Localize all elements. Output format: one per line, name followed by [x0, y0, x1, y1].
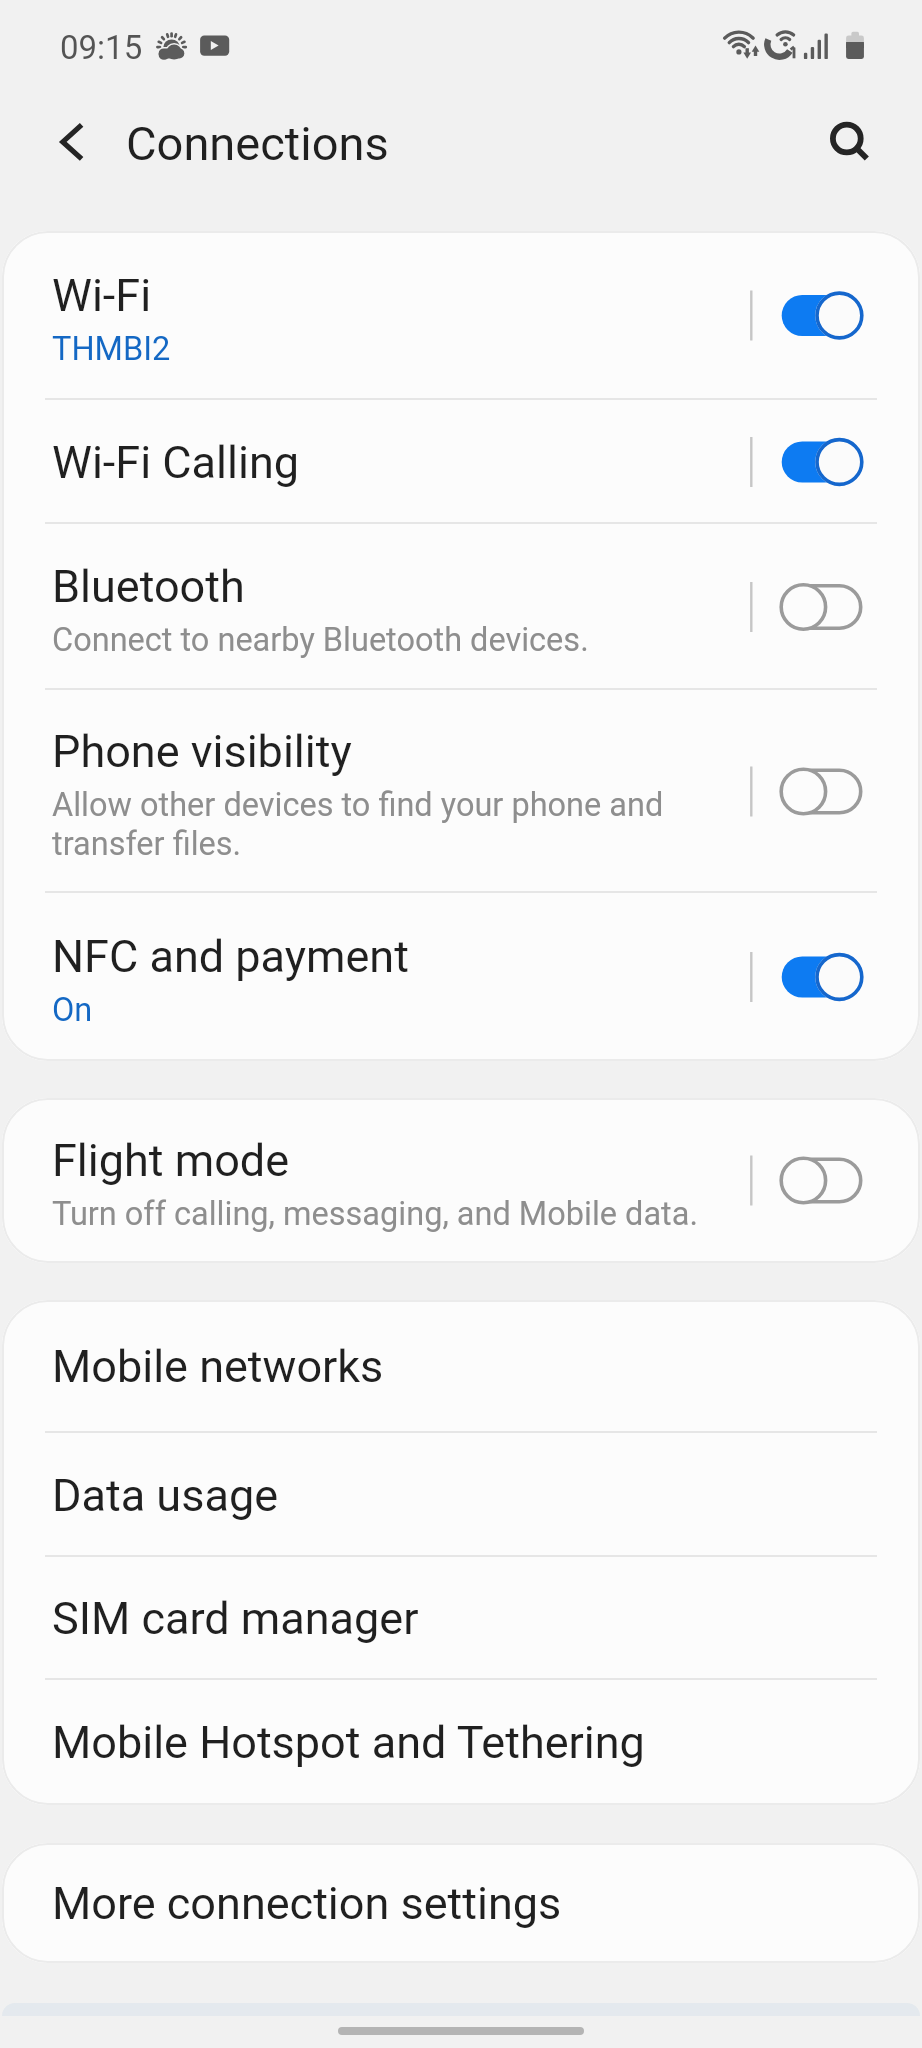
button[interactable]: Phone visibility off: [748, 690, 920, 893]
staticText: NFC and payment: [52, 930, 409, 983]
button[interactable]: Back: [35, 104, 107, 176]
button[interactable]: Bluetooth off: [748, 524, 920, 690]
button[interactable]: Search: [812, 104, 884, 176]
button[interactable]: Flight mode: [2, 1098, 920, 1263]
button[interactable]: Phone visibility: [2, 690, 920, 893]
staticText: Mobile networks: [52, 1340, 384, 1393]
button[interactable]: Mobile Hotspot and Tethering: [2, 1680, 920, 1805]
staticText: Data usage: [52, 1469, 279, 1522]
button[interactable]: Mobile networks: [2, 1300, 920, 1433]
staticText: SIM card manager: [52, 1592, 419, 1645]
staticText: Turn off calling, messaging, and Mobile …: [52, 1195, 699, 1233]
button[interactable]: Wi-Fi: [2, 231, 920, 400]
staticText: Flight mode: [52, 1134, 290, 1187]
staticText: Connect to nearby Bluetooth devices.: [52, 621, 589, 659]
staticText: Bluetooth: [52, 560, 245, 613]
staticText: On: [52, 991, 93, 1029]
staticText: Wi-Fi: [52, 269, 152, 322]
button[interactable]: Wi-Fi Calling on: [748, 400, 920, 524]
staticText: Mobile Hotspot and Tethering: [52, 1716, 645, 1769]
button[interactable]: Data usage: [2, 1433, 920, 1557]
staticText: Wi-Fi Calling: [52, 436, 299, 489]
staticText: Phone visibility: [52, 725, 352, 778]
button[interactable]: Flight mode off: [748, 1098, 920, 1263]
button[interactable]: NFC and payment: [2, 893, 920, 1061]
staticText: More connection settings: [52, 1877, 562, 1930]
button[interactable]: NFC and payment on: [748, 893, 920, 1061]
staticText: THMBI2: [52, 330, 171, 368]
button[interactable]: Wi-Fi on: [748, 231, 920, 400]
button[interactable]: Wi-Fi Calling: [2, 400, 920, 524]
staticText: Connections: [126, 116, 389, 171]
button[interactable]: More connection settings: [2, 1843, 920, 1963]
button[interactable]: Bluetooth: [2, 524, 920, 690]
staticText: Allow other devices to find your phone a…: [52, 786, 728, 863]
staticText: 09:15: [60, 28, 143, 67]
button[interactable]: SIM card manager: [2, 1557, 920, 1680]
